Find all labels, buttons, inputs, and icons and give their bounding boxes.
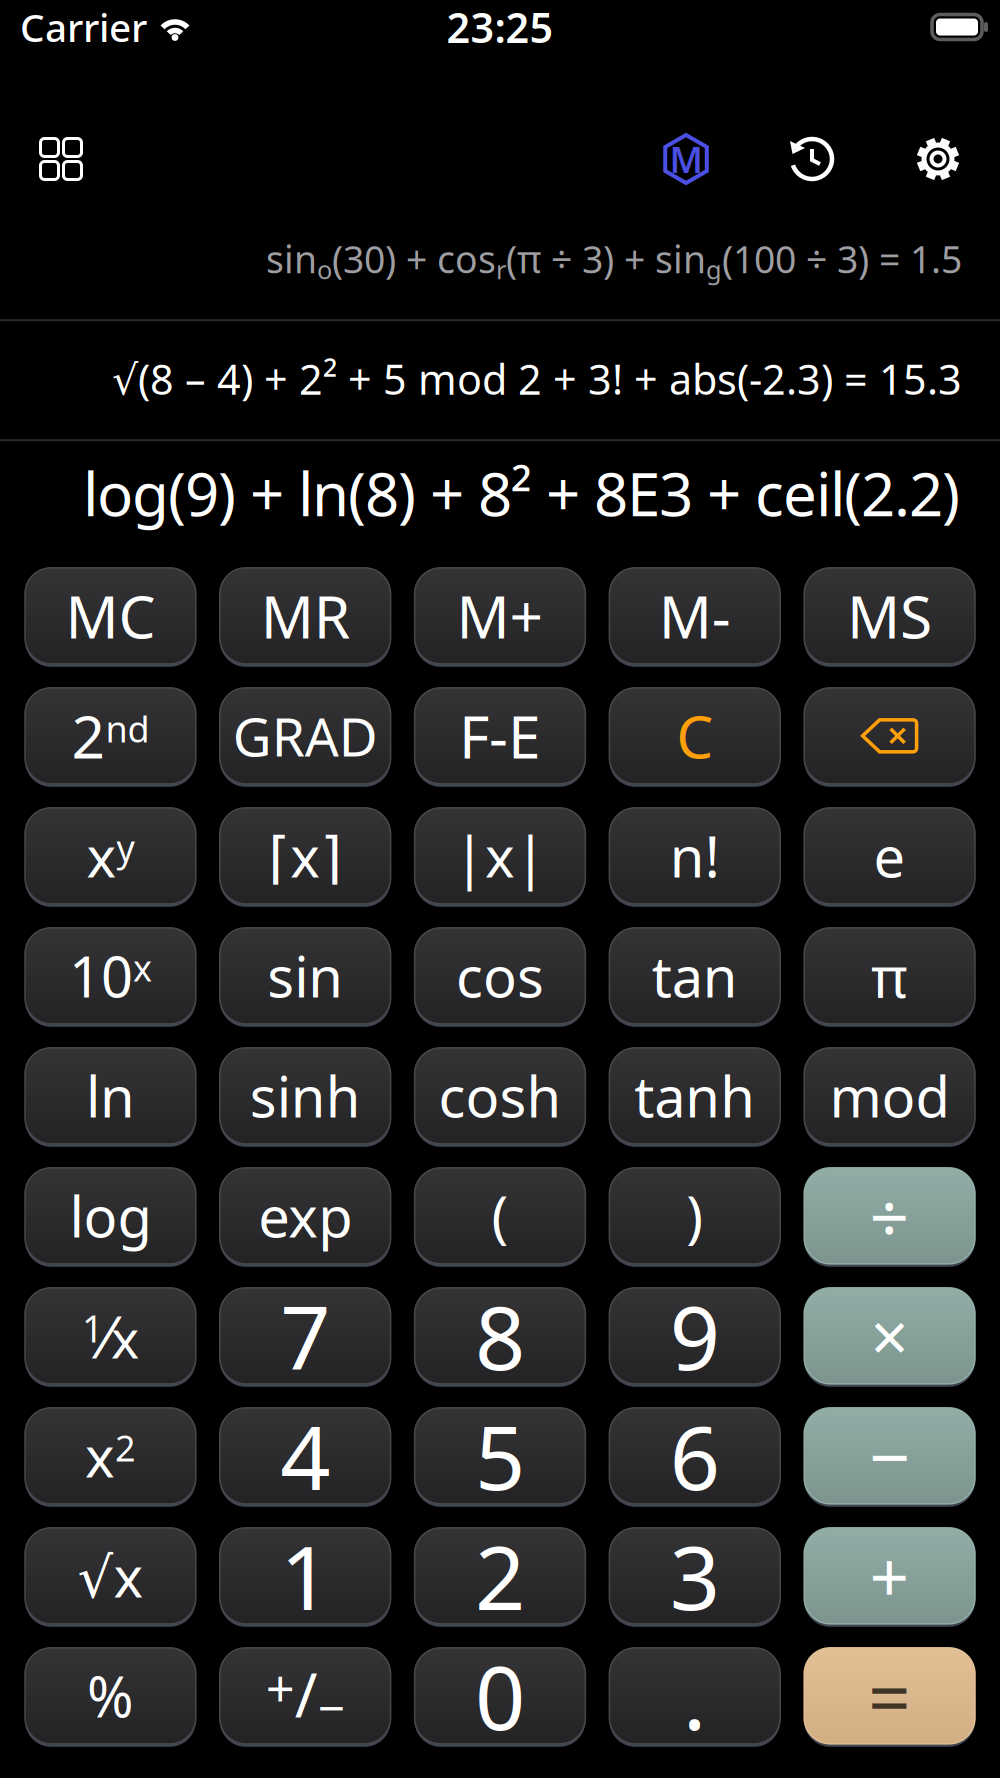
button[interactable]: n! (609, 808, 780, 904)
button[interactable]: MS (804, 568, 975, 664)
button[interactable]: cos (415, 928, 585, 1024)
button[interactable]: − (804, 1408, 975, 1504)
button[interactable]: log (25, 1168, 196, 1264)
staticText: ln (86, 1059, 135, 1133)
staticText: F-E (459, 697, 541, 775)
button[interactable]: 10x (25, 928, 196, 1024)
button[interactable]: π (804, 928, 975, 1024)
button[interactable]: ) (609, 1168, 780, 1264)
staticText: × (871, 1292, 909, 1380)
button[interactable]: . (609, 1648, 780, 1744)
staticText: ÷ (870, 1170, 910, 1262)
staticText: 1 (280, 1517, 330, 1634)
button[interactable]: mod (804, 1048, 975, 1144)
button[interactable]: History (789, 136, 835, 182)
button[interactable]: cosh (415, 1048, 585, 1144)
staticText: mod (830, 1059, 950, 1133)
staticText: tan (652, 939, 738, 1013)
staticText: |x| (454, 819, 546, 893)
staticText: 3 (670, 1517, 720, 1634)
staticText: π (871, 939, 908, 1013)
button[interactable]: = (804, 1648, 975, 1744)
staticText: 5 (475, 1397, 525, 1514)
staticText: 6 (670, 1397, 720, 1514)
staticText: exp (258, 1179, 352, 1253)
staticText: 2nd (71, 697, 149, 775)
button[interactable]: xy (25, 808, 196, 904)
button[interactable]: |x| (415, 808, 585, 904)
button[interactable]: 1⁄x (25, 1288, 196, 1384)
staticText: log(9) + ln(8) + 8² + 8E3 + ceil(2.2) (83, 453, 960, 533)
button[interactable]: 1 (220, 1528, 391, 1624)
button[interactable]: ÷ (804, 1168, 975, 1264)
button[interactable]: Keyboards (38, 136, 84, 182)
staticText: ( (491, 1179, 508, 1253)
button[interactable]: ln (25, 1048, 196, 1144)
button[interactable]: tanh (609, 1048, 780, 1144)
button[interactable]: 2 (415, 1528, 585, 1624)
button[interactable]: + (804, 1528, 975, 1624)
button[interactable]: 6 (609, 1408, 780, 1504)
button[interactable]: exp (220, 1168, 391, 1264)
staticText: 9 (670, 1277, 720, 1394)
staticText: cosh (438, 1059, 561, 1133)
staticText: M+ (456, 577, 543, 655)
button[interactable]: Settings (915, 136, 961, 182)
staticText: tanh (634, 1059, 755, 1133)
button[interactable]: ( (415, 1168, 585, 1264)
staticText: 10x (69, 939, 152, 1013)
staticText: Carrier (20, 1, 147, 53)
button[interactable]: 7 (220, 1288, 391, 1384)
button[interactable]: GRAD (220, 688, 391, 784)
staticText: n! (670, 819, 720, 893)
staticText: 23:25 (446, 0, 553, 54)
button[interactable]: MC (25, 568, 196, 664)
staticText: C (676, 697, 713, 775)
button[interactable]: 8 (415, 1288, 585, 1384)
staticText: ) (686, 1179, 703, 1253)
staticText: e (874, 819, 906, 893)
button[interactable]: +/− (220, 1648, 391, 1744)
button[interactable]: 4 (220, 1408, 391, 1504)
button[interactable]: % (25, 1648, 196, 1744)
staticText: M- (659, 577, 731, 655)
staticText: 7 (280, 1277, 330, 1394)
button[interactable]: 3 (609, 1528, 780, 1624)
staticText: + (870, 1530, 910, 1622)
button[interactable]: sin (220, 928, 391, 1024)
button[interactable]: Delete (804, 688, 975, 784)
button[interactable]: 2nd (25, 688, 196, 784)
button[interactable]: 0 (415, 1648, 585, 1744)
staticText: ⌈x⌉ (268, 819, 342, 893)
button[interactable]: sinh (220, 1048, 391, 1144)
button[interactable]: C (609, 688, 780, 784)
staticText: log (69, 1179, 151, 1253)
button[interactable]: ⌈x⌉ (220, 808, 391, 904)
staticText: sino(30) + cosr(π ÷ 3) + sing(100 ÷ 3) =… (266, 234, 962, 286)
button[interactable]: MR (220, 568, 391, 664)
staticText: = (868, 1646, 911, 1745)
staticText: √(8 – 4) + 2² + 5 mod 2 + 3! + abs(-2.3)… (112, 351, 962, 406)
staticText: − (869, 1408, 910, 1504)
button[interactable]: 9 (609, 1288, 780, 1384)
button[interactable]: tan (609, 928, 780, 1024)
button[interactable]: F-E (415, 688, 585, 784)
button[interactable]: Memory (663, 135, 709, 183)
button[interactable]: e (804, 808, 975, 904)
staticText: xy (86, 819, 134, 893)
staticText: 1⁄x (82, 1297, 139, 1375)
button[interactable]: × (804, 1288, 975, 1384)
button[interactable]: M+ (415, 568, 585, 664)
staticText: cos (456, 939, 544, 1013)
staticText: % (87, 1659, 134, 1733)
button[interactable]: x2 (25, 1408, 196, 1504)
button[interactable]: M- (609, 568, 780, 664)
staticText: +/− (266, 1653, 345, 1739)
staticText: √x (77, 1539, 143, 1613)
staticText: MS (847, 577, 932, 655)
staticText: 2 (475, 1517, 525, 1634)
button[interactable]: √x (25, 1528, 196, 1624)
staticText: 8 (475, 1277, 525, 1394)
staticText: 0 (475, 1637, 525, 1754)
button[interactable]: 5 (415, 1408, 585, 1504)
